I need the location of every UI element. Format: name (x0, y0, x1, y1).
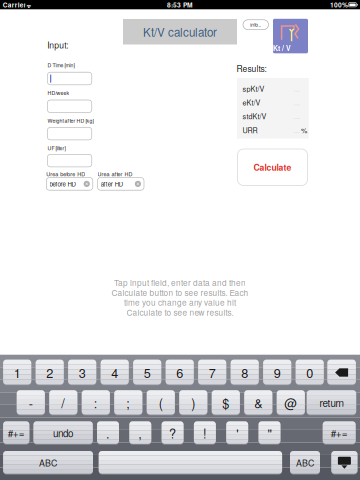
button[interactable]: undo (33, 421, 93, 445)
button[interactable]: Calculate (237, 149, 307, 185)
staticText: Carrier (3, 0, 27, 9)
staticText: ) (191, 394, 195, 412)
button[interactable]: ( (147, 390, 175, 415)
button[interactable]: & (244, 390, 272, 415)
button[interactable]: ABC (3, 451, 93, 474)
staticText: , (138, 424, 142, 442)
button[interactable]: HD/week (47, 100, 92, 113)
staticText: ( (159, 394, 163, 412)
button[interactable]: , (129, 421, 151, 445)
staticText: ABC (296, 456, 314, 469)
staticText: info... (250, 21, 261, 28)
button[interactable]: Hide keyboard (331, 451, 357, 474)
button[interactable]: #+= (3, 421, 29, 445)
button[interactable]: ) (179, 390, 207, 415)
staticText: Kt / V (273, 43, 291, 53)
staticText: 6 (176, 363, 183, 381)
staticText: @ (284, 394, 297, 412)
staticText: return (319, 396, 343, 410)
button[interactable]: : (82, 390, 110, 415)
staticText: eKt/V (242, 97, 260, 107)
staticText: HD/week (47, 89, 69, 96)
staticText: ; (126, 394, 130, 412)
button[interactable]: ABC (290, 451, 320, 474)
staticText: Weight after HD [kg] (47, 117, 93, 124)
button[interactable]: Delete (327, 360, 356, 385)
button[interactable]: UF [liter] (47, 154, 92, 167)
staticText: ... (294, 84, 300, 93)
staticText: #+= (8, 426, 25, 440)
staticText: ' (236, 424, 238, 442)
staticText: Calculate to see new results. (126, 306, 233, 318)
staticText: 8 (241, 363, 248, 381)
staticText: Kt/V calculator (143, 23, 217, 40)
staticText: ABC (39, 456, 57, 469)
staticText: 100% (330, 0, 348, 9)
staticText: Urea after HD (97, 170, 132, 178)
staticText: URR (242, 125, 257, 135)
staticText: spKt/V (242, 83, 264, 94)
button[interactable]: 7 (198, 360, 226, 385)
button[interactable]: Weight after HD [kg] (47, 127, 92, 140)
button[interactable]: " (258, 421, 280, 445)
button[interactable]: . (97, 421, 119, 445)
button[interactable]: ! (194, 421, 216, 445)
staticText: Calculate button to see results. Each (111, 286, 248, 298)
button[interactable]: ? (162, 421, 184, 445)
button[interactable]: ' (226, 421, 248, 445)
staticText: Tap input field, enter data and then (114, 277, 246, 288)
button[interactable]: 6 (166, 360, 194, 385)
staticText: . (106, 424, 110, 442)
staticText: 2 (46, 363, 53, 381)
button[interactable]: @ (277, 390, 305, 415)
staticText: : (94, 394, 98, 412)
button[interactable]: 1 (3, 360, 31, 385)
button[interactable]: Kt/V app icon (273, 19, 308, 53)
button[interactable]: 4 (101, 360, 129, 385)
staticText: before HD (49, 179, 75, 188)
button[interactable]: Urea before HD (46, 178, 93, 190)
button[interactable]: ; (114, 390, 142, 415)
button[interactable]: 2 (36, 360, 64, 385)
staticText: ... (294, 98, 300, 107)
button[interactable]: #+= (323, 421, 356, 445)
staticText: " (267, 424, 271, 442)
staticText: 7 (209, 363, 216, 381)
button[interactable]: space (99, 451, 282, 474)
button[interactable]: - (17, 390, 45, 415)
staticText: / (61, 394, 65, 412)
button[interactable]: / (49, 390, 77, 415)
staticText: Input: (47, 39, 68, 51)
staticText: ✕ (136, 181, 140, 187)
button[interactable]: $ (212, 390, 240, 415)
staticText: $ (222, 394, 229, 412)
staticText: #+= (331, 426, 348, 440)
button[interactable]: D Time [min] (47, 72, 92, 85)
staticText: D Time [min] (47, 61, 74, 69)
staticText: time you change any value hit (124, 296, 236, 308)
staticText: 0 (306, 363, 313, 381)
button[interactable]: 8 (231, 360, 259, 385)
staticText: Results: (237, 62, 267, 74)
staticText: ✕ (85, 181, 89, 187)
staticText: % (301, 125, 307, 135)
staticText: ... (294, 111, 300, 121)
button[interactable]: Urea after HD (97, 178, 144, 190)
staticText: stdKt/V (242, 111, 266, 121)
button[interactable]: 5 (133, 360, 161, 385)
staticText: 1 (14, 363, 21, 381)
button[interactable]: 9 (263, 360, 291, 385)
button[interactable]: 0 (296, 360, 324, 385)
staticText: - (29, 394, 33, 412)
button[interactable]: 3 (68, 360, 96, 385)
staticText: 9 (274, 363, 281, 381)
staticText: undo (53, 426, 73, 440)
button[interactable]: Info (243, 20, 268, 30)
button[interactable]: return (307, 390, 356, 415)
staticText: after HD (101, 179, 123, 188)
button[interactable]: Kt/V calculator (123, 19, 237, 44)
staticText: UF [liter] (47, 144, 65, 152)
staticText: ! (203, 424, 207, 442)
staticText: 3 (79, 363, 86, 381)
staticText: Calculate (253, 161, 291, 173)
